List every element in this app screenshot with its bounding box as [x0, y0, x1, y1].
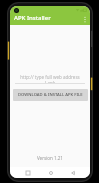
- button[interactable]: Back: [67, 167, 78, 178]
- button[interactable]: More options: [80, 15, 89, 24]
- staticText: APK Installer: [14, 14, 51, 22]
- button[interactable]: http:// type full web address (.apk: [15, 74, 85, 84]
- staticText: http:// type full web address (.apk: [15, 74, 85, 84]
- button[interactable]: Recent apps: [22, 167, 33, 178]
- button[interactable]: DOWNLOAD & INSTALL APK FILE: [13, 89, 88, 101]
- staticText: Version 1.21: [37, 155, 63, 161]
- staticText: DOWNLOAD & INSTALL APK FILE: [18, 92, 83, 98]
- button[interactable]: Home: [45, 167, 56, 178]
